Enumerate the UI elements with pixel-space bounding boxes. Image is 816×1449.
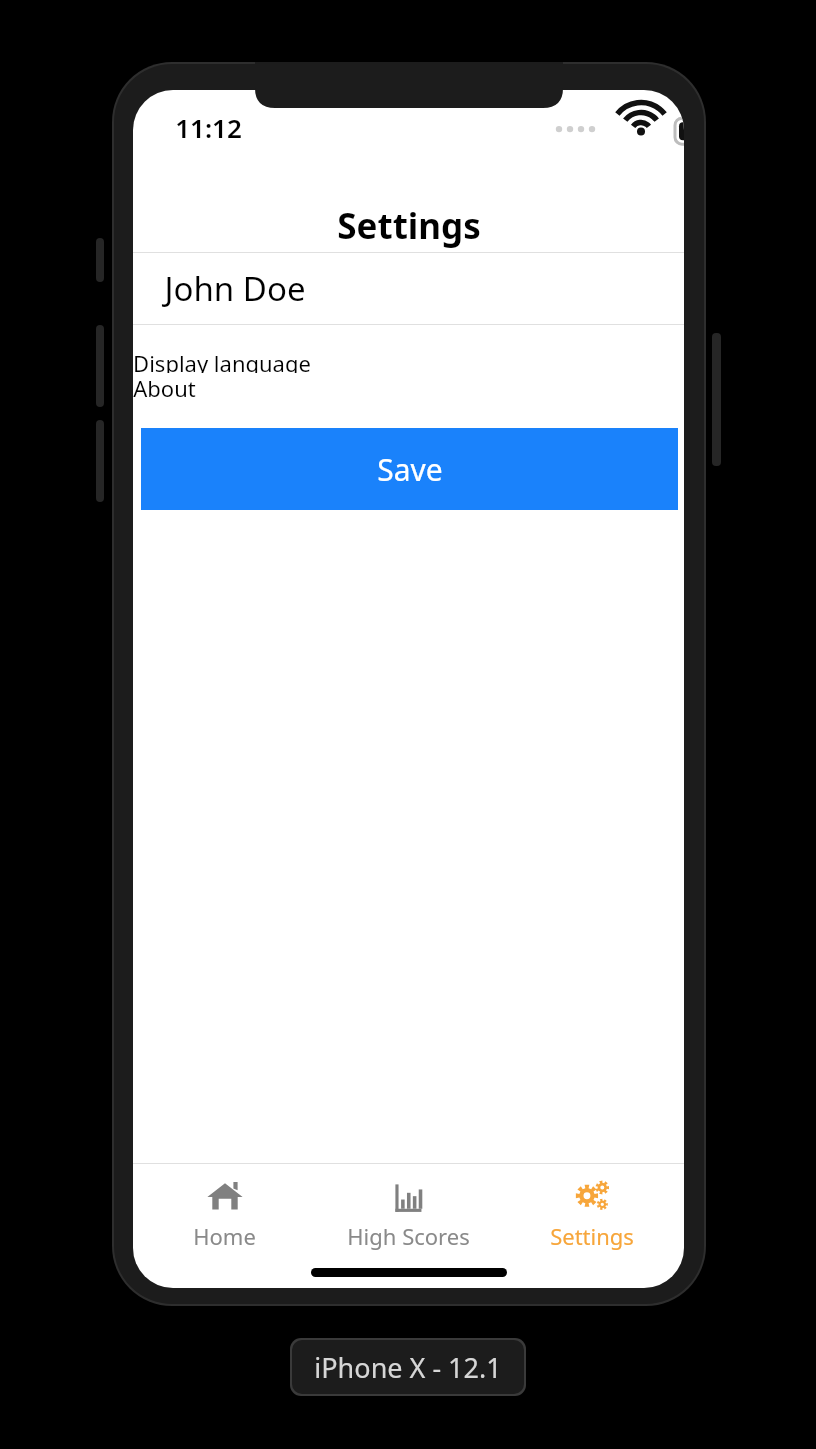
staticText: Save <box>377 449 443 490</box>
button[interactable]: High Scores <box>316 1164 500 1264</box>
button[interactable]: Save <box>141 428 678 510</box>
staticText: Home <box>193 1221 256 1251</box>
staticText: High Scores <box>347 1221 470 1251</box>
staticText: iPhone X - 12.1 <box>314 1349 502 1386</box>
staticText: John Doe <box>164 266 306 311</box>
staticText: Display language <box>133 348 311 373</box>
staticText: About <box>133 373 196 398</box>
button[interactable]: Display language <box>133 348 684 373</box>
staticText: Settings <box>337 202 481 250</box>
button[interactable]: Home <box>133 1164 316 1264</box>
button[interactable]: About <box>133 373 684 398</box>
button[interactable]: John Doe <box>133 253 684 324</box>
staticText: 11:12 <box>175 110 242 145</box>
staticText: Settings <box>550 1221 634 1251</box>
button[interactable]: Settings <box>500 1164 684 1264</box>
